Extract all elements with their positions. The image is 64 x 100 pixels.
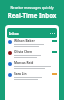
staticText: Sara Lin [14,72,27,76]
staticText: Wilson Baker [14,39,35,43]
button[interactable]: Sara Lin [5,71,59,82]
staticText: Receive messages quickly [0,5,64,10]
button[interactable]: Inbox [7,28,57,38]
staticText: Inbox [9,31,19,36]
staticText: Real-Time Inbox [0,11,64,19]
staticText: Marcus Reid [14,61,34,65]
button[interactable]: Marcus Reid [5,60,59,71]
button[interactable]: Olivia Chen [5,49,59,60]
staticText: Olivia Chen [14,50,33,54]
button[interactable]: Wilson Baker [5,38,59,49]
